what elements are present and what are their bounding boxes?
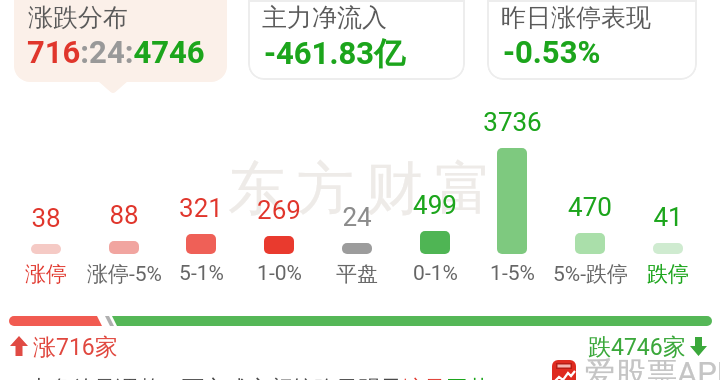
staticText: 大盘放量调整，两市成交额较昨日明显缩量回落: [28, 375, 490, 380]
button[interactable]: 涨跌分布: [14, 0, 227, 82]
staticText: -461.83亿: [264, 34, 405, 73]
staticText: 321: [179, 193, 223, 223]
staticText: 昨日涨停表现: [501, 2, 651, 33]
staticText: 24: [342, 202, 372, 232]
staticText: 平盘: [336, 261, 378, 287]
staticText: 涨716家: [33, 333, 118, 362]
staticText: 470: [568, 192, 612, 222]
staticText: 3736: [483, 107, 542, 137]
button[interactable]: 昨日涨停表现: [487, 0, 697, 80]
button[interactable]: 主力净流入: [248, 0, 465, 80]
staticText: 5-1%: [179, 261, 224, 286]
staticText: 499: [413, 190, 457, 220]
staticText: 88: [109, 200, 139, 230]
staticText: 1-5%: [490, 261, 535, 286]
staticText: 跌停: [647, 261, 689, 287]
staticText: 涨停: [25, 261, 67, 287]
staticText: 0-1%: [413, 261, 458, 286]
staticText: 716:24:4746: [27, 34, 205, 70]
staticText: 涨停-5%: [87, 261, 162, 287]
staticText: 东方财富: [222, 153, 498, 225]
staticText: 41: [653, 202, 683, 232]
staticText: 主力净流入: [262, 2, 387, 33]
staticText: -0.53%: [503, 34, 601, 70]
staticText: 跌4746家: [588, 333, 686, 362]
staticText: 5%-跌停: [553, 261, 628, 287]
staticText: 1-0%: [257, 261, 302, 286]
staticText: 38: [31, 203, 61, 233]
staticText: 涨跌分布: [28, 2, 128, 33]
staticText: 269: [257, 195, 301, 225]
staticText: 爱股票APP: [584, 354, 720, 380]
